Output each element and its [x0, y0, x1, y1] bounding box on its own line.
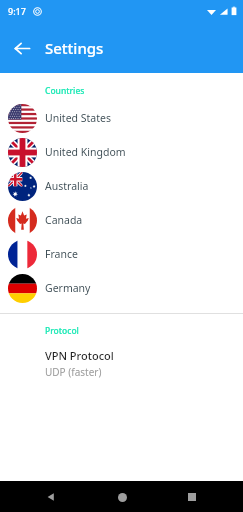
staticText: UDP (faster)	[45, 365, 102, 379]
button[interactable]: Canada	[0, 203, 243, 237]
staticText: Australia	[45, 179, 89, 193]
staticText: Canada	[45, 213, 83, 227]
staticText: France	[45, 247, 78, 261]
staticText: Protocol	[45, 325, 79, 337]
staticText: Germany	[45, 281, 91, 295]
staticText: United Kingdom	[45, 145, 126, 159]
button[interactable]: VPN Protocol	[0, 341, 243, 389]
button[interactable]: Germany	[0, 271, 243, 305]
button[interactable]: Back	[38, 484, 64, 510]
button[interactable]: Recent apps	[179, 484, 205, 510]
staticText: Countries	[45, 85, 85, 97]
button[interactable]: France	[0, 237, 243, 271]
staticText: VPN Protocol	[45, 348, 114, 363]
staticText: 9:17	[8, 5, 26, 17]
button[interactable]: United Kingdom	[0, 135, 243, 169]
staticText: United States	[45, 111, 111, 125]
button[interactable]: Australia	[0, 169, 243, 203]
staticText: Settings	[45, 38, 104, 58]
button[interactable]: United States	[0, 101, 243, 135]
button[interactable]: Home	[109, 484, 135, 510]
button[interactable]: Back	[6, 32, 38, 64]
